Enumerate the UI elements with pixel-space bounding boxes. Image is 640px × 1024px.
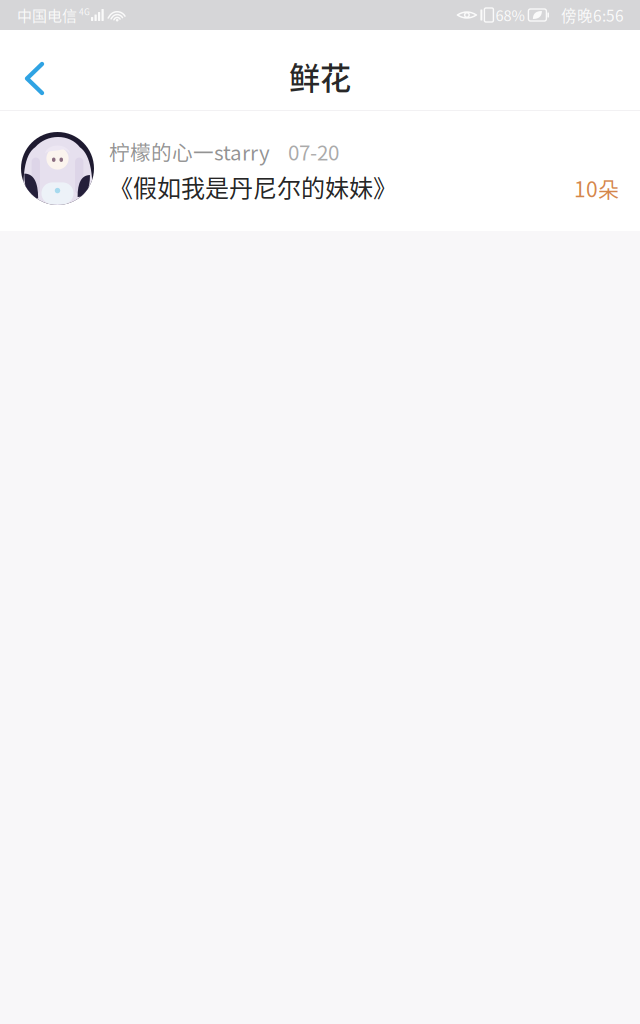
staticText: 中国电信 xyxy=(17,4,77,26)
staticText: 柠檬的心一starry xyxy=(109,137,270,166)
staticText: 68% xyxy=(495,4,524,25)
staticText: 鲜花 xyxy=(289,53,351,98)
staticText: 10朵 xyxy=(574,173,619,203)
button[interactable]: Back xyxy=(0,30,66,111)
staticText: 4G xyxy=(79,5,90,18)
staticText: 07-20 xyxy=(288,137,339,166)
staticText: 傍晚6:56 xyxy=(561,4,624,26)
button[interactable]: 柠檬的心一starry xyxy=(0,111,640,231)
staticText: 《假如我是丹尼尔的妹妹》 xyxy=(109,169,397,204)
